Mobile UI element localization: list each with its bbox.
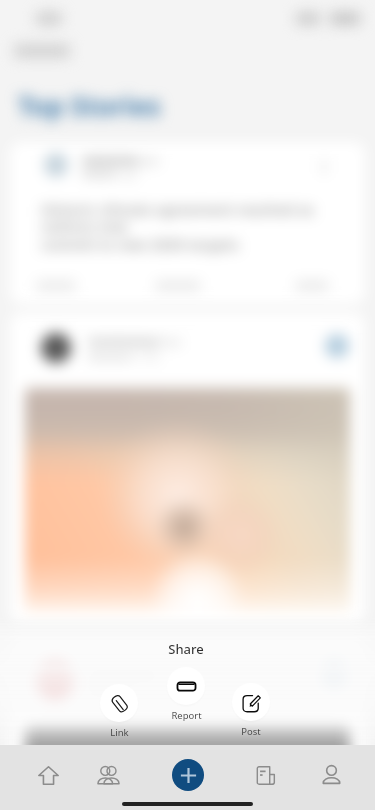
staticText: Link [110,726,129,739]
staticText: The Morning Post [88,334,182,349]
staticText: Share [168,640,204,658]
button[interactable]: Link [99,683,139,739]
staticText: 45 minutes ago [88,349,161,363]
button[interactable]: Create [172,759,204,791]
button[interactable]: Profile [311,755,351,795]
button[interactable]: Groups [88,755,128,795]
staticText: Top Stories [18,88,161,123]
button[interactable]: Report [166,666,206,722]
staticText: Historic climate agreement reached as na… [41,199,337,254]
staticText: 2 hours ago [82,167,139,181]
staticText: Post [241,725,261,738]
button[interactable]: Home [28,755,68,795]
staticText: Global Tribune [82,153,159,168]
button[interactable]: News [246,755,286,795]
button[interactable]: Post [231,682,271,738]
staticText: Report [171,709,202,722]
